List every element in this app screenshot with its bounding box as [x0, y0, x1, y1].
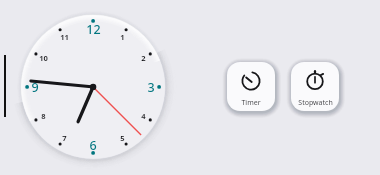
staticText: 3	[147, 79, 155, 96]
button[interactable]: Timer	[227, 62, 275, 111]
staticText: 7	[62, 133, 67, 143]
button[interactable]: Stopwatch	[291, 62, 339, 111]
staticText: 2	[141, 53, 146, 63]
staticText: 4	[141, 111, 146, 121]
staticText: 8	[41, 111, 46, 121]
staticText: 1	[120, 32, 125, 42]
staticText: 6	[89, 137, 97, 154]
staticText: 10	[39, 53, 48, 63]
staticText: Timer	[241, 98, 261, 108]
staticText: 11	[60, 32, 69, 42]
staticText: 9	[31, 79, 39, 96]
other: Timer	[241, 71, 261, 91]
other: Stopwatch	[305, 71, 325, 91]
staticText: Stopwatch	[298, 98, 333, 108]
staticText: 5	[120, 133, 125, 143]
staticText: 12	[86, 21, 101, 38]
